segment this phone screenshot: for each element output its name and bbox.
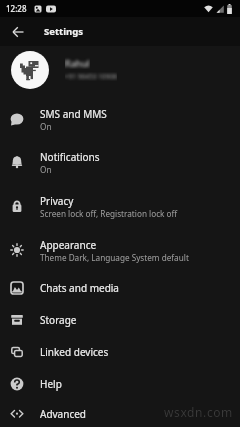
staticText: Advanced (40, 407, 86, 421)
button[interactable]: Privacy (0, 184, 240, 228)
staticText: +91 96453 10908 (65, 72, 117, 81)
staticText: Theme Dark, Language System default (40, 252, 189, 263)
button[interactable]: Rahul (0, 46, 240, 98)
button[interactable]: Notifications (0, 140, 240, 184)
staticText: Settings (44, 25, 83, 38)
staticText: wsxdn.com (164, 404, 233, 420)
staticText: On (40, 164, 52, 175)
staticText: Privacy (40, 194, 74, 208)
button[interactable]: Linked devices (0, 336, 240, 368)
staticText: Appearance (40, 238, 97, 252)
button[interactable]: Storage (0, 304, 240, 336)
staticText: Help (40, 377, 62, 391)
button[interactable]: Chats and media (0, 272, 240, 304)
staticText: Rahul (65, 57, 90, 69)
staticText: Storage (40, 313, 77, 327)
staticText: Screen lock off, Registration lock off (40, 208, 178, 219)
staticText: 12:28 (6, 3, 27, 14)
staticText: On (40, 121, 52, 132)
staticText: SMS and MMS (40, 107, 107, 121)
button[interactable] (0, 17, 36, 46)
staticText: Notifications (40, 150, 100, 164)
button[interactable]: Help (0, 368, 240, 400)
staticText: Linked devices (40, 345, 109, 359)
button[interactable]: SMS and MMS (0, 98, 240, 140)
button[interactable]: Appearance (0, 228, 240, 272)
staticText: Chats and media (40, 281, 119, 295)
button[interactable]: Advanced (0, 400, 240, 427)
